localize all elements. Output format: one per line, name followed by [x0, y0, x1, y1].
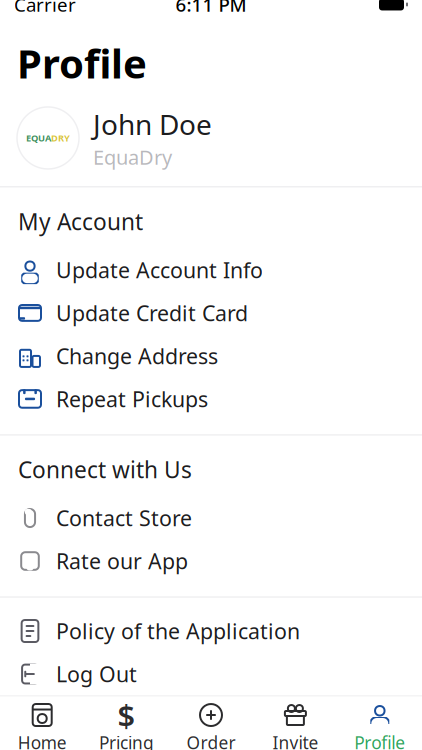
button[interactable]: Update Credit Card — [0, 291, 422, 334]
staticText: Profile — [17, 36, 147, 90]
staticText: Change Address — [56, 342, 218, 370]
button[interactable]: $ — [84, 695, 169, 750]
staticText: Repeat Pickups — [56, 385, 208, 413]
button[interactable]: Contact Store — [0, 496, 422, 539]
staticText: Update Credit Card — [56, 299, 248, 327]
staticText: $ — [118, 695, 136, 735]
staticText: Invite — [272, 731, 318, 750]
staticText: EQUA — [26, 132, 51, 144]
button[interactable]: Update Account Info — [0, 248, 422, 291]
staticText: Order — [186, 731, 235, 750]
staticText: Home — [18, 731, 67, 750]
staticText: 6:11 PM — [175, 0, 246, 17]
staticText: Pricing — [99, 731, 154, 750]
button[interactable]: Profile — [338, 695, 422, 750]
staticText: My Account — [18, 206, 143, 236]
button[interactable]: Log Out — [0, 652, 422, 695]
staticText: Contact Store — [56, 504, 192, 532]
button[interactable]: Invite — [253, 695, 338, 750]
staticText: Rate our App — [56, 547, 188, 575]
staticText: Update Account Info — [56, 256, 263, 284]
button[interactable]: Rate our App — [0, 539, 422, 582]
button[interactable]: Policy of the Application — [0, 609, 422, 652]
staticText: John Doe — [93, 106, 212, 143]
button[interactable]: Change Address — [0, 334, 422, 377]
staticText: Policy of the Application — [56, 617, 300, 645]
button[interactable]: Repeat Pickups — [0, 377, 422, 420]
staticText: Connect with Us — [18, 454, 192, 484]
button[interactable]: Order — [169, 695, 253, 750]
staticText: Carrier — [14, 0, 76, 17]
staticText: EquaDry — [93, 144, 172, 170]
staticText: Profile — [354, 731, 405, 750]
button[interactable]: Home — [0, 695, 84, 750]
staticText: Log Out — [56, 660, 137, 688]
staticText: DRY — [51, 132, 70, 144]
